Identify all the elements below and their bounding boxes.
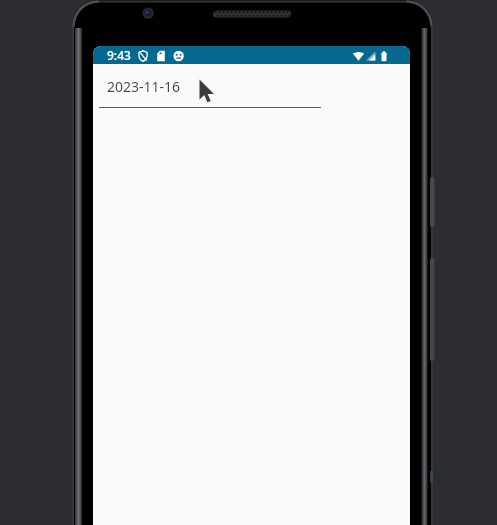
staticText: 2023-11-16 [107, 77, 181, 96]
staticText: 9:43 [107, 47, 131, 63]
button[interactable]: 2023-11-16 [93, 64, 410, 125]
